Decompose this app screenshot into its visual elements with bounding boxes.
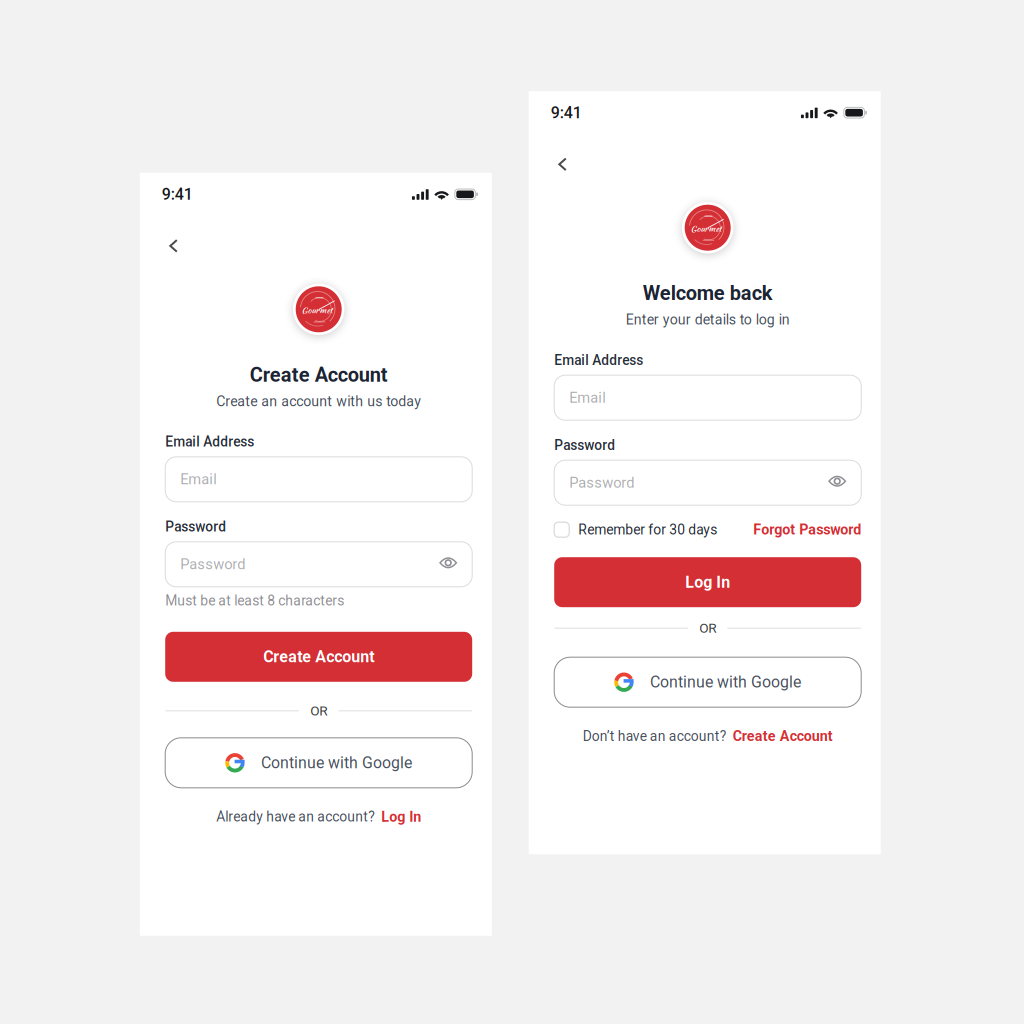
- staticText: Email Address: [165, 434, 254, 450]
- button[interactable]: Create Account: [165, 632, 472, 682]
- staticText: Email Address: [554, 352, 643, 368]
- staticText: Gourmet: [301, 304, 332, 316]
- button[interactable]: Continue with Google: [165, 738, 472, 788]
- button[interactable]: Forgot Password: [753, 521, 861, 538]
- staticText: Password: [554, 437, 615, 453]
- staticText: OR: [699, 620, 716, 636]
- staticText: Don’t have an account?: [583, 728, 727, 744]
- staticText: Welcome back: [643, 281, 773, 305]
- staticText: Enter your details to log in: [626, 311, 790, 328]
- button[interactable]: Back: [549, 150, 577, 178]
- staticText: Remember for 30 days: [578, 522, 717, 538]
- staticText: Create an account with us today: [216, 393, 421, 410]
- staticText: Create Account: [250, 363, 388, 386]
- staticText: Forgot Password: [753, 521, 861, 538]
- staticText: Email: [180, 471, 217, 488]
- button[interactable]: Log In: [381, 808, 421, 825]
- button[interactable]: Show password: [435, 550, 461, 576]
- staticText: Log In: [685, 573, 730, 592]
- staticText: Must be at least 8 characters: [165, 593, 344, 609]
- staticText: 9:41: [162, 185, 193, 204]
- staticText: OR: [310, 703, 327, 719]
- staticText: Continue with Google: [261, 753, 412, 772]
- staticText: Log In: [381, 808, 421, 825]
- staticText: 9:41: [551, 103, 582, 122]
- button[interactable]: Create Account: [733, 728, 833, 744]
- staticText: Password: [165, 519, 226, 535]
- button[interactable]: Log In: [554, 557, 861, 607]
- staticText: Password: [569, 474, 634, 491]
- button[interactable]: Back: [160, 232, 188, 260]
- button[interactable]: Show password: [824, 468, 850, 494]
- staticText: Email: [569, 389, 606, 406]
- button[interactable]: Continue with Google: [554, 657, 861, 707]
- staticText: Password: [180, 556, 245, 573]
- staticText: Gourmet: [690, 222, 721, 235]
- button[interactable]: Remember for 30 days: [554, 522, 717, 538]
- staticText: Create Account: [263, 647, 374, 666]
- staticText: Continue with Google: [650, 673, 801, 691]
- staticText: Already have an account?: [216, 809, 375, 825]
- staticText: Create Account: [733, 728, 833, 744]
